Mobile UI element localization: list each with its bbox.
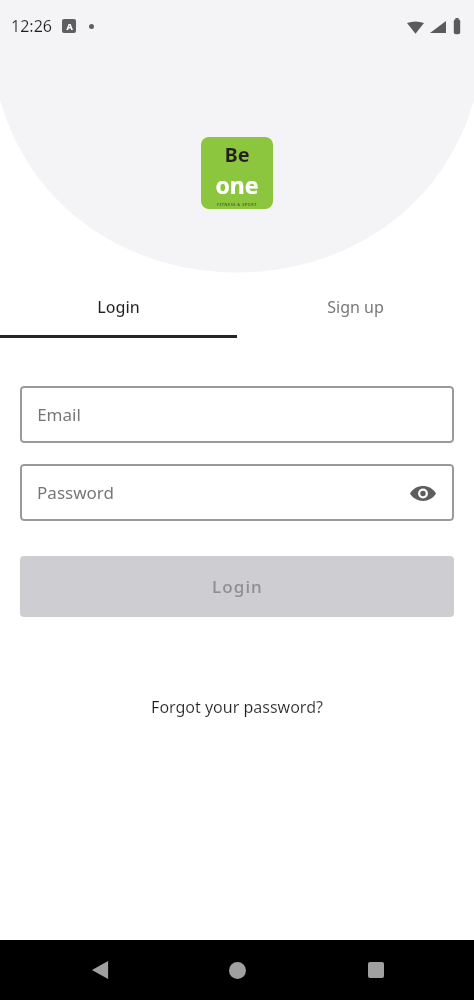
staticText: 12:26 [11, 15, 52, 37]
staticText: Sign up [327, 296, 384, 318]
staticText: FITNESS & SPORT [217, 202, 257, 207]
button[interactable]: Password [20, 464, 454, 521]
button[interactable]: Email [20, 386, 454, 443]
button[interactable]: Recent apps [356, 950, 396, 990]
button[interactable]: Forgot your password? [139, 690, 335, 724]
button[interactable]: Back [80, 950, 120, 990]
staticText: Login [212, 575, 263, 598]
staticText: Login [97, 296, 140, 318]
button[interactable]: Home [217, 950, 257, 990]
button[interactable]: Show password [408, 478, 438, 508]
staticText: Email [37, 403, 81, 426]
button[interactable]: Login [0, 279, 237, 335]
staticText: one [215, 169, 259, 200]
staticText: Be [224, 141, 250, 168]
staticText: Password [37, 481, 114, 504]
staticText: A [66, 20, 73, 32]
staticText: Forgot your password? [151, 696, 323, 718]
button[interactable]: Sign up [237, 279, 474, 335]
button[interactable]: Login [20, 556, 454, 617]
button[interactable]: Be [201, 137, 273, 209]
